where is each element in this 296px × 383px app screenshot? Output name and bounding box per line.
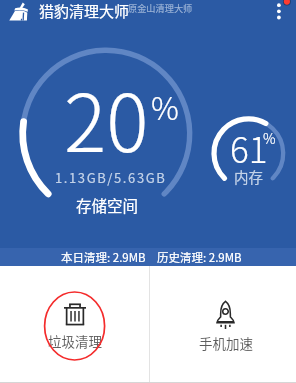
staticText: 手机加速 bbox=[199, 333, 253, 353]
staticText: % bbox=[263, 128, 276, 148]
button[interactable]: 垃圾清理 bbox=[0, 266, 149, 383]
staticText: 猎豹清理大师 bbox=[39, 0, 130, 22]
staticText: 20 bbox=[64, 60, 149, 174]
staticText: 内存 bbox=[234, 166, 263, 187]
staticText: 本日清理: 2.9MB bbox=[61, 249, 146, 266]
staticText: 垃圾清理 bbox=[48, 331, 102, 351]
staticText: 1.13GB/5.63GB bbox=[55, 168, 167, 187]
staticText: 存储空间 bbox=[76, 194, 139, 216]
button[interactable]: 手机加速 bbox=[150, 266, 296, 383]
button[interactable]: More options bbox=[272, 0, 296, 24]
staticText: 历史清理: 2.9MB bbox=[157, 249, 242, 266]
staticText: % bbox=[151, 84, 179, 129]
staticText: 原金山清理大师 bbox=[128, 1, 193, 14]
staticText: 61 bbox=[230, 122, 268, 173]
